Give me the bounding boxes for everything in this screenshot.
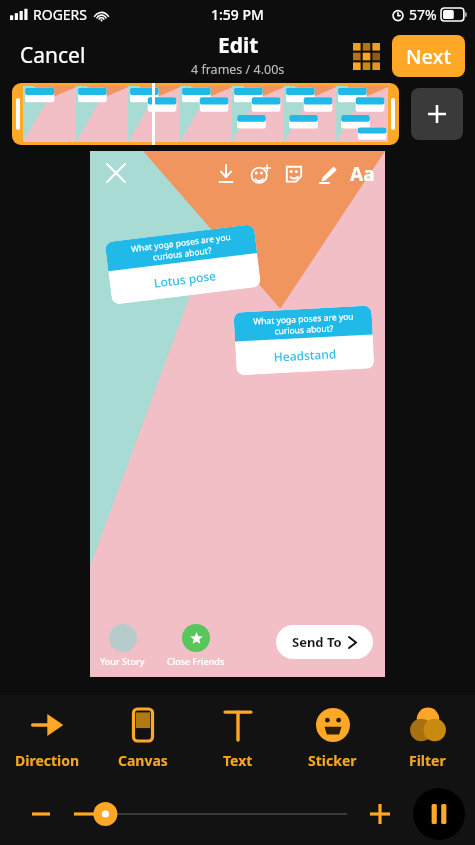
- staticText: 1:59 PM: [211, 5, 264, 24]
- button[interactable]: Sticker: [277, 157, 311, 191]
- staticText: Canvas: [118, 751, 168, 770]
- button[interactable]: Grid: [346, 36, 386, 76]
- button[interactable]: Add frame: [411, 88, 463, 140]
- button[interactable]: Text: [190, 695, 285, 783]
- button[interactable]: Draw: [311, 157, 345, 191]
- button[interactable]: Direction: [0, 695, 95, 783]
- button[interactable]: Decrease: [26, 799, 56, 829]
- button[interactable]: Next: [392, 35, 465, 77]
- staticText: Close Friends: [167, 655, 225, 667]
- staticText: What yoga poses are you curious about?: [130, 231, 233, 265]
- button[interactable]: Cancel: [16, 37, 90, 74]
- staticText: ROGERS: [33, 5, 88, 24]
- button[interactable]: Sticker: [285, 695, 380, 783]
- staticText: Text: [223, 751, 253, 770]
- staticText: Edit: [218, 31, 259, 60]
- button[interactable]: Close Friends: [167, 624, 225, 667]
- staticText: Direction: [15, 751, 80, 770]
- button[interactable]: Your Story: [100, 624, 145, 667]
- button[interactable]: [74, 800, 347, 828]
- button[interactable]: Filter: [380, 695, 475, 783]
- staticText: 4 frames / 4.00s: [191, 61, 285, 78]
- button[interactable]: Pause: [413, 788, 465, 840]
- staticText: Cancel: [20, 41, 86, 70]
- button[interactable]: [12, 83, 399, 145]
- button[interactable]: Effects: [243, 157, 277, 191]
- staticText: Filter: [409, 751, 446, 770]
- button[interactable]: Save: [209, 157, 243, 191]
- staticText: Sticker: [308, 751, 357, 770]
- button[interactable]: Send To: [276, 625, 373, 659]
- staticText: What yoga poses are you curious about?: [253, 310, 355, 338]
- staticText: Send To: [292, 633, 342, 651]
- staticText: Your Story: [100, 655, 145, 667]
- staticText: Lotus pose: [153, 267, 217, 291]
- button[interactable]: Aa: [345, 157, 379, 191]
- staticText: Next: [406, 43, 452, 70]
- staticText: Aa: [350, 161, 375, 187]
- button[interactable]: Canvas: [95, 695, 190, 783]
- staticText: Headstand: [273, 345, 337, 365]
- staticText: 57%: [409, 5, 437, 24]
- button[interactable]: Increase: [365, 799, 395, 829]
- button[interactable]: Close: [98, 155, 134, 191]
